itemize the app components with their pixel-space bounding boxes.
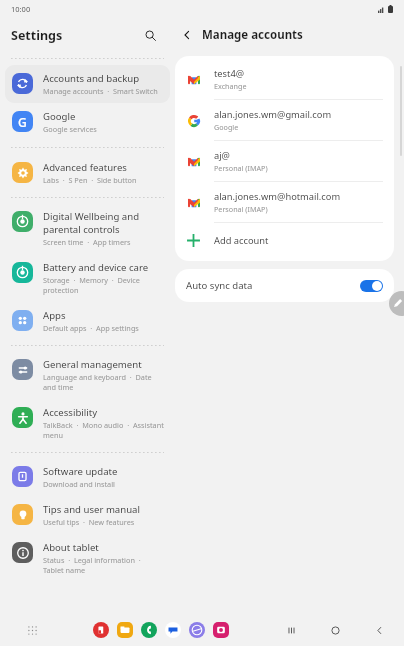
button[interactable]: Apps bbox=[5, 302, 170, 340]
staticText: Default apps · App settings bbox=[43, 323, 139, 333]
staticText: 10:00 bbox=[11, 4, 31, 14]
staticText: alan.jones.wm@hotmail.com bbox=[214, 190, 341, 203]
button[interactable]: Search bbox=[139, 24, 161, 46]
button[interactable]: Back bbox=[368, 619, 390, 641]
staticText: Google bbox=[43, 110, 76, 123]
button[interactable]: App bbox=[213, 622, 229, 638]
staticText: About tablet bbox=[43, 541, 99, 554]
staticText: Useful tips · New features bbox=[43, 517, 135, 527]
staticText: Status · Legal information · Tablet name bbox=[43, 555, 164, 575]
staticText: Manage accounts bbox=[202, 27, 303, 43]
staticText: Battery and device care bbox=[43, 261, 149, 274]
button[interactable]: G bbox=[5, 103, 170, 141]
button[interactable]: test4@ bbox=[175, 59, 394, 99]
staticText: Google bbox=[214, 122, 239, 132]
button[interactable]: Accessibility bbox=[5, 399, 170, 447]
button[interactable]: Edit bbox=[389, 291, 404, 316]
button[interactable]: Advanced features bbox=[5, 154, 170, 192]
button[interactable]: App bbox=[165, 622, 181, 638]
button[interactable]: alan.jones.wm@gmail.com bbox=[175, 100, 394, 140]
staticText: Google services bbox=[43, 124, 97, 134]
button[interactable]: All apps bbox=[22, 620, 42, 640]
button[interactable]: General management bbox=[5, 351, 170, 399]
staticText: Accessibility bbox=[43, 406, 98, 419]
staticText: G bbox=[18, 114, 27, 130]
staticText: Storage · Memory · Device protection bbox=[43, 275, 164, 295]
staticText: Personal (IMAP) bbox=[214, 204, 268, 214]
staticText: Download and install bbox=[43, 479, 115, 489]
button[interactable]: Accounts and backup bbox=[5, 65, 170, 103]
button[interactable]: alan.jones.wm@hotmail.com bbox=[175, 182, 394, 222]
staticText: alan.jones.wm@gmail.com bbox=[214, 108, 332, 121]
staticText: test4@ bbox=[214, 67, 245, 80]
staticText: Personal (IMAP) bbox=[214, 163, 268, 173]
button[interactable]: About tablet bbox=[5, 534, 170, 582]
staticText: Accounts and backup bbox=[43, 72, 140, 85]
button[interactable]: Back bbox=[175, 23, 199, 47]
button[interactable]: Digital Wellbeing and parental controls bbox=[5, 203, 170, 254]
staticText: aj@ bbox=[214, 149, 230, 162]
staticText: Apps bbox=[43, 309, 66, 322]
button[interactable]: Software update bbox=[5, 458, 170, 496]
staticText: Add account bbox=[214, 234, 269, 247]
staticText: Software update bbox=[43, 465, 118, 478]
button[interactable]: Battery and device care bbox=[5, 254, 170, 302]
button[interactable]: App bbox=[189, 622, 205, 638]
button[interactable]: Tips and user manual bbox=[5, 496, 170, 534]
staticText: Manage accounts · Smart Switch bbox=[43, 86, 158, 96]
button[interactable]: App bbox=[141, 622, 157, 638]
staticText: Exchange bbox=[214, 81, 247, 91]
staticText: Auto sync data bbox=[186, 279, 360, 292]
staticText: Settings bbox=[11, 27, 63, 44]
staticText: Language and keyboard · Date and time bbox=[43, 372, 164, 392]
staticText: Advanced features bbox=[43, 161, 127, 174]
staticText: Tips and user manual bbox=[43, 503, 140, 516]
staticText: Digital Wellbeing and parental controls bbox=[43, 210, 164, 236]
staticText: TalkBack · Mono audio · Assistant menu bbox=[43, 420, 164, 440]
button[interactable]: Add account bbox=[175, 223, 394, 258]
button[interactable]: Auto sync data bbox=[175, 269, 394, 302]
button[interactable]: Home bbox=[324, 619, 346, 641]
staticText: General management bbox=[43, 358, 142, 371]
button[interactable]: App bbox=[117, 622, 133, 638]
staticText: Labs · S Pen · Side button bbox=[43, 175, 137, 185]
button[interactable]: aj@ bbox=[175, 141, 394, 181]
button[interactable]: App bbox=[93, 622, 109, 638]
staticText: Screen time · App timers bbox=[43, 237, 131, 247]
button[interactable]: Recents bbox=[280, 619, 302, 641]
